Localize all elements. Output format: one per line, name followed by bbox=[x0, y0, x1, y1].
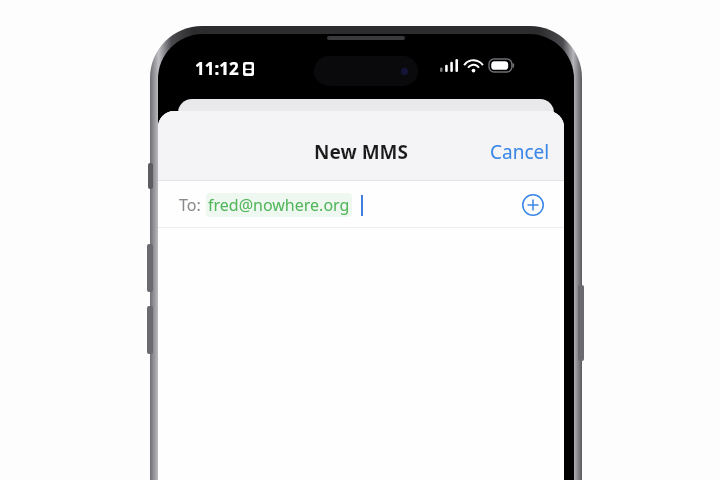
staticText: 11:12 bbox=[195, 57, 239, 80]
other: Volume down bbox=[147, 306, 153, 354]
other: Power bbox=[578, 285, 584, 361]
staticText: Cancel bbox=[490, 139, 550, 165]
button[interactable]: Add recipient bbox=[516, 188, 550, 222]
other: Silent switch bbox=[148, 163, 153, 189]
staticText: fred@nowhere.org bbox=[208, 194, 350, 216]
button[interactable]: To: bbox=[158, 181, 564, 228]
button[interactable]: Cancel bbox=[476, 131, 564, 173]
staticText: New MMS bbox=[314, 139, 408, 165]
other: Volume up bbox=[147, 244, 153, 292]
staticText: To: bbox=[179, 194, 201, 216]
